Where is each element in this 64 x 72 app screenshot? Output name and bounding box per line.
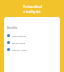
button[interactable]: More energy [4,33,60,38]
staticText: Better sleep [12,41,26,44]
staticText: a healthy diet [23,10,41,14]
staticText: Benefits [7,26,18,30]
button[interactable]: Better sleep [4,40,60,45]
staticText: Healthy heart [12,48,27,51]
staticText: The benefits of [23,5,42,9]
staticText: More energy [12,34,27,37]
button[interactable]: Healthy heart [4,47,60,52]
